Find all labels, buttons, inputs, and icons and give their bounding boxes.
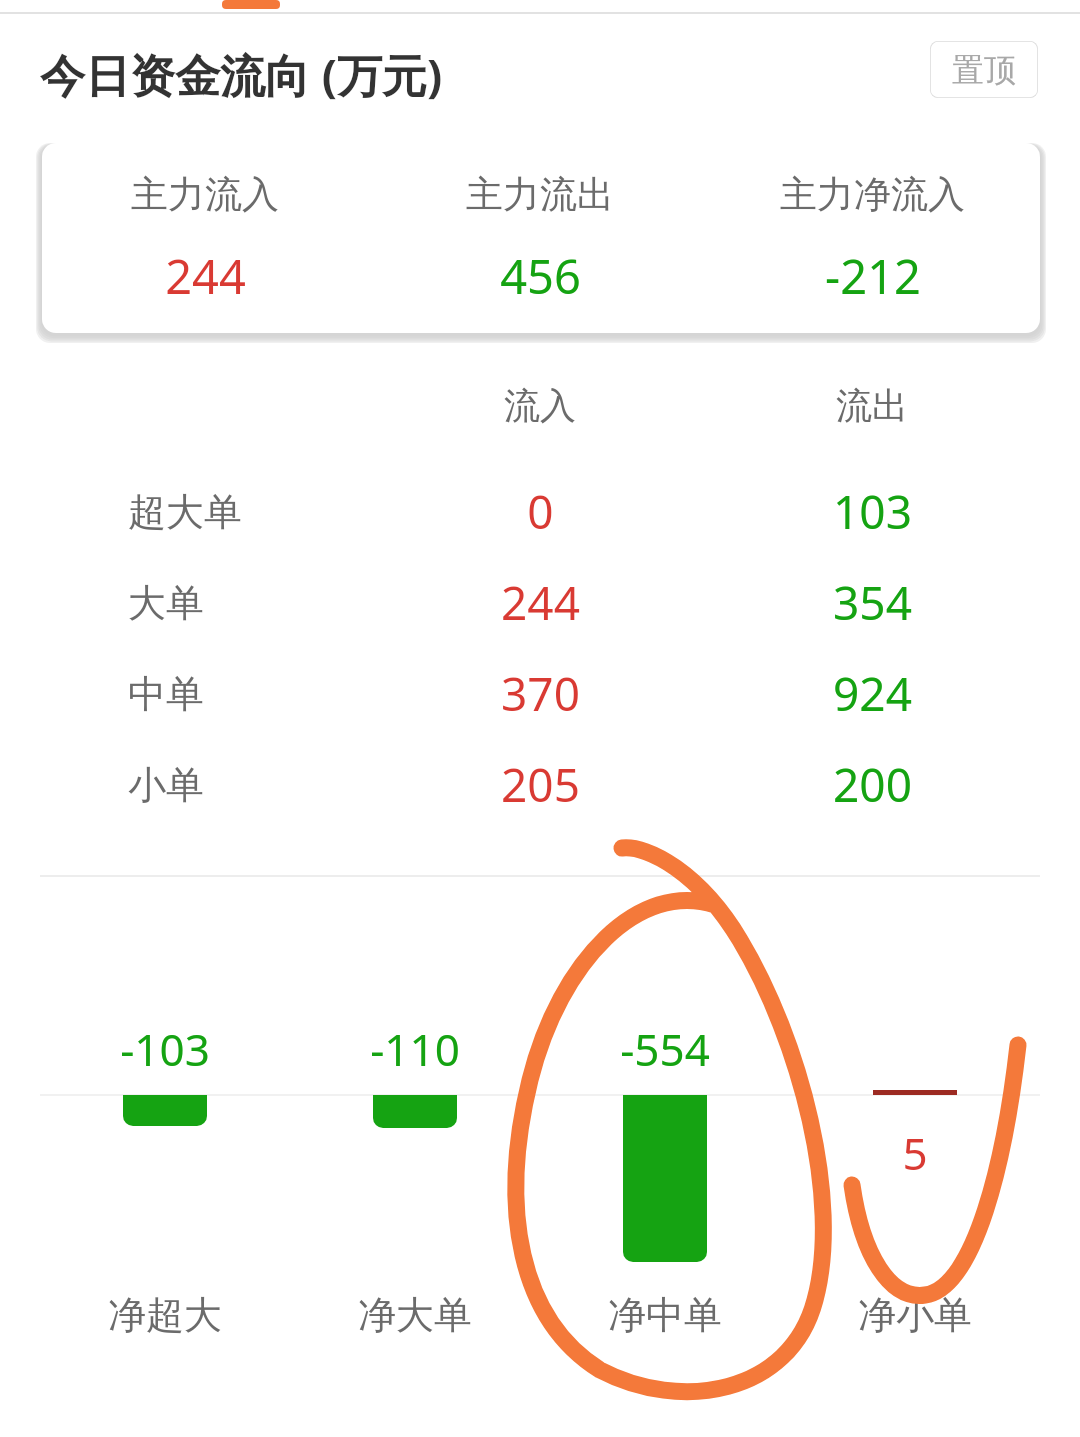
staticText: 456 — [500, 244, 581, 301]
button[interactable] — [40, 654, 1040, 740]
staticText: 流出 — [836, 383, 908, 428]
button[interactable]: 主力流出 — [380, 171, 700, 301]
staticText: 主力净流入 — [780, 171, 965, 218]
button[interactable]: 主力净流入 — [712, 171, 1032, 301]
staticText: 354 — [833, 571, 912, 634]
staticText: 净大单 — [358, 1291, 472, 1339]
staticText: 小单 — [128, 761, 204, 809]
staticText: 流入 — [504, 383, 576, 428]
button[interactable]: 今日资金流向 (万元) — [40, 44, 443, 105]
staticText: 205 — [501, 753, 580, 816]
staticText: 大单 — [128, 579, 204, 627]
staticText: 244 — [165, 244, 246, 301]
staticText: -554 — [620, 1019, 710, 1079]
staticText: 103 — [833, 480, 912, 543]
staticText: 中单 — [128, 670, 204, 718]
staticText: 主力流入 — [131, 171, 279, 218]
button[interactable]: 主力流入 — [45, 171, 365, 301]
staticText: 净中单 — [608, 1291, 722, 1339]
button[interactable]: 净大单 — [335, 1285, 495, 1345]
staticText: 置顶 — [952, 50, 1016, 90]
staticText: 370 — [501, 662, 580, 725]
staticText: 924 — [833, 662, 912, 725]
button[interactable]: 净小单 — [835, 1285, 995, 1345]
button[interactable]: 主力流入 — [42, 143, 1040, 333]
button[interactable] — [40, 563, 1040, 649]
staticText: -212 — [825, 244, 921, 301]
staticText: 5 — [902, 1123, 928, 1183]
staticText: 净超大 — [108, 1291, 222, 1339]
staticText: 今日资金流向 (万元) — [40, 44, 443, 105]
button[interactable]: 净中单 — [585, 1285, 745, 1345]
staticText: 244 — [501, 571, 580, 634]
staticText: -103 — [120, 1019, 210, 1079]
button[interactable]: 净超大 — [85, 1285, 245, 1345]
staticText: -110 — [370, 1019, 460, 1079]
staticText: 0 — [527, 480, 554, 543]
staticText: 200 — [833, 753, 912, 816]
button[interactable] — [40, 472, 1040, 558]
staticText: 主力流出 — [466, 171, 614, 218]
button[interactable] — [40, 745, 1040, 831]
staticText: 净小单 — [858, 1291, 972, 1339]
button[interactable]: 置顶 — [930, 41, 1038, 98]
staticText: 超大单 — [128, 488, 242, 536]
